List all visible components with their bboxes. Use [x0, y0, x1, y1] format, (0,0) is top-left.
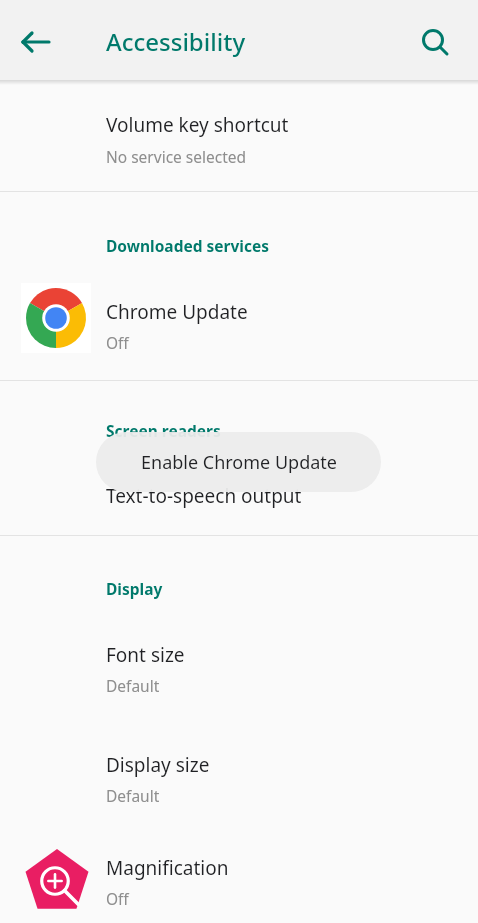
staticText: Display size	[106, 752, 210, 778]
button[interactable]: Enable Chrome Update	[96, 432, 381, 492]
button[interactable]	[0, 268, 478, 380]
staticText: Downloaded services	[106, 235, 270, 256]
staticText: Enable Chrome Update	[141, 450, 337, 475]
staticText: Off	[106, 332, 129, 353]
staticText: Text-to-speech output	[106, 483, 302, 509]
button[interactable]	[0, 840, 478, 923]
staticText: Screen readers	[106, 420, 221, 441]
staticText: Font size	[106, 642, 185, 668]
button[interactable]	[0, 460, 478, 535]
staticText: No service selected	[106, 146, 247, 167]
staticText: Off	[106, 888, 129, 909]
staticText: Default	[106, 675, 160, 696]
button[interactable]	[0, 620, 478, 730]
staticText: Volume key shortcut	[106, 112, 289, 138]
staticText: Display	[106, 578, 163, 599]
staticText: Magnification	[106, 855, 229, 881]
button[interactable]: Search	[412, 19, 458, 65]
button[interactable]: Back	[14, 20, 58, 64]
staticText: Chrome Update	[106, 299, 248, 325]
button[interactable]	[0, 92, 478, 191]
staticText: Accessibility	[106, 25, 246, 58]
staticText: Default	[106, 785, 160, 806]
button[interactable]	[0, 730, 478, 840]
